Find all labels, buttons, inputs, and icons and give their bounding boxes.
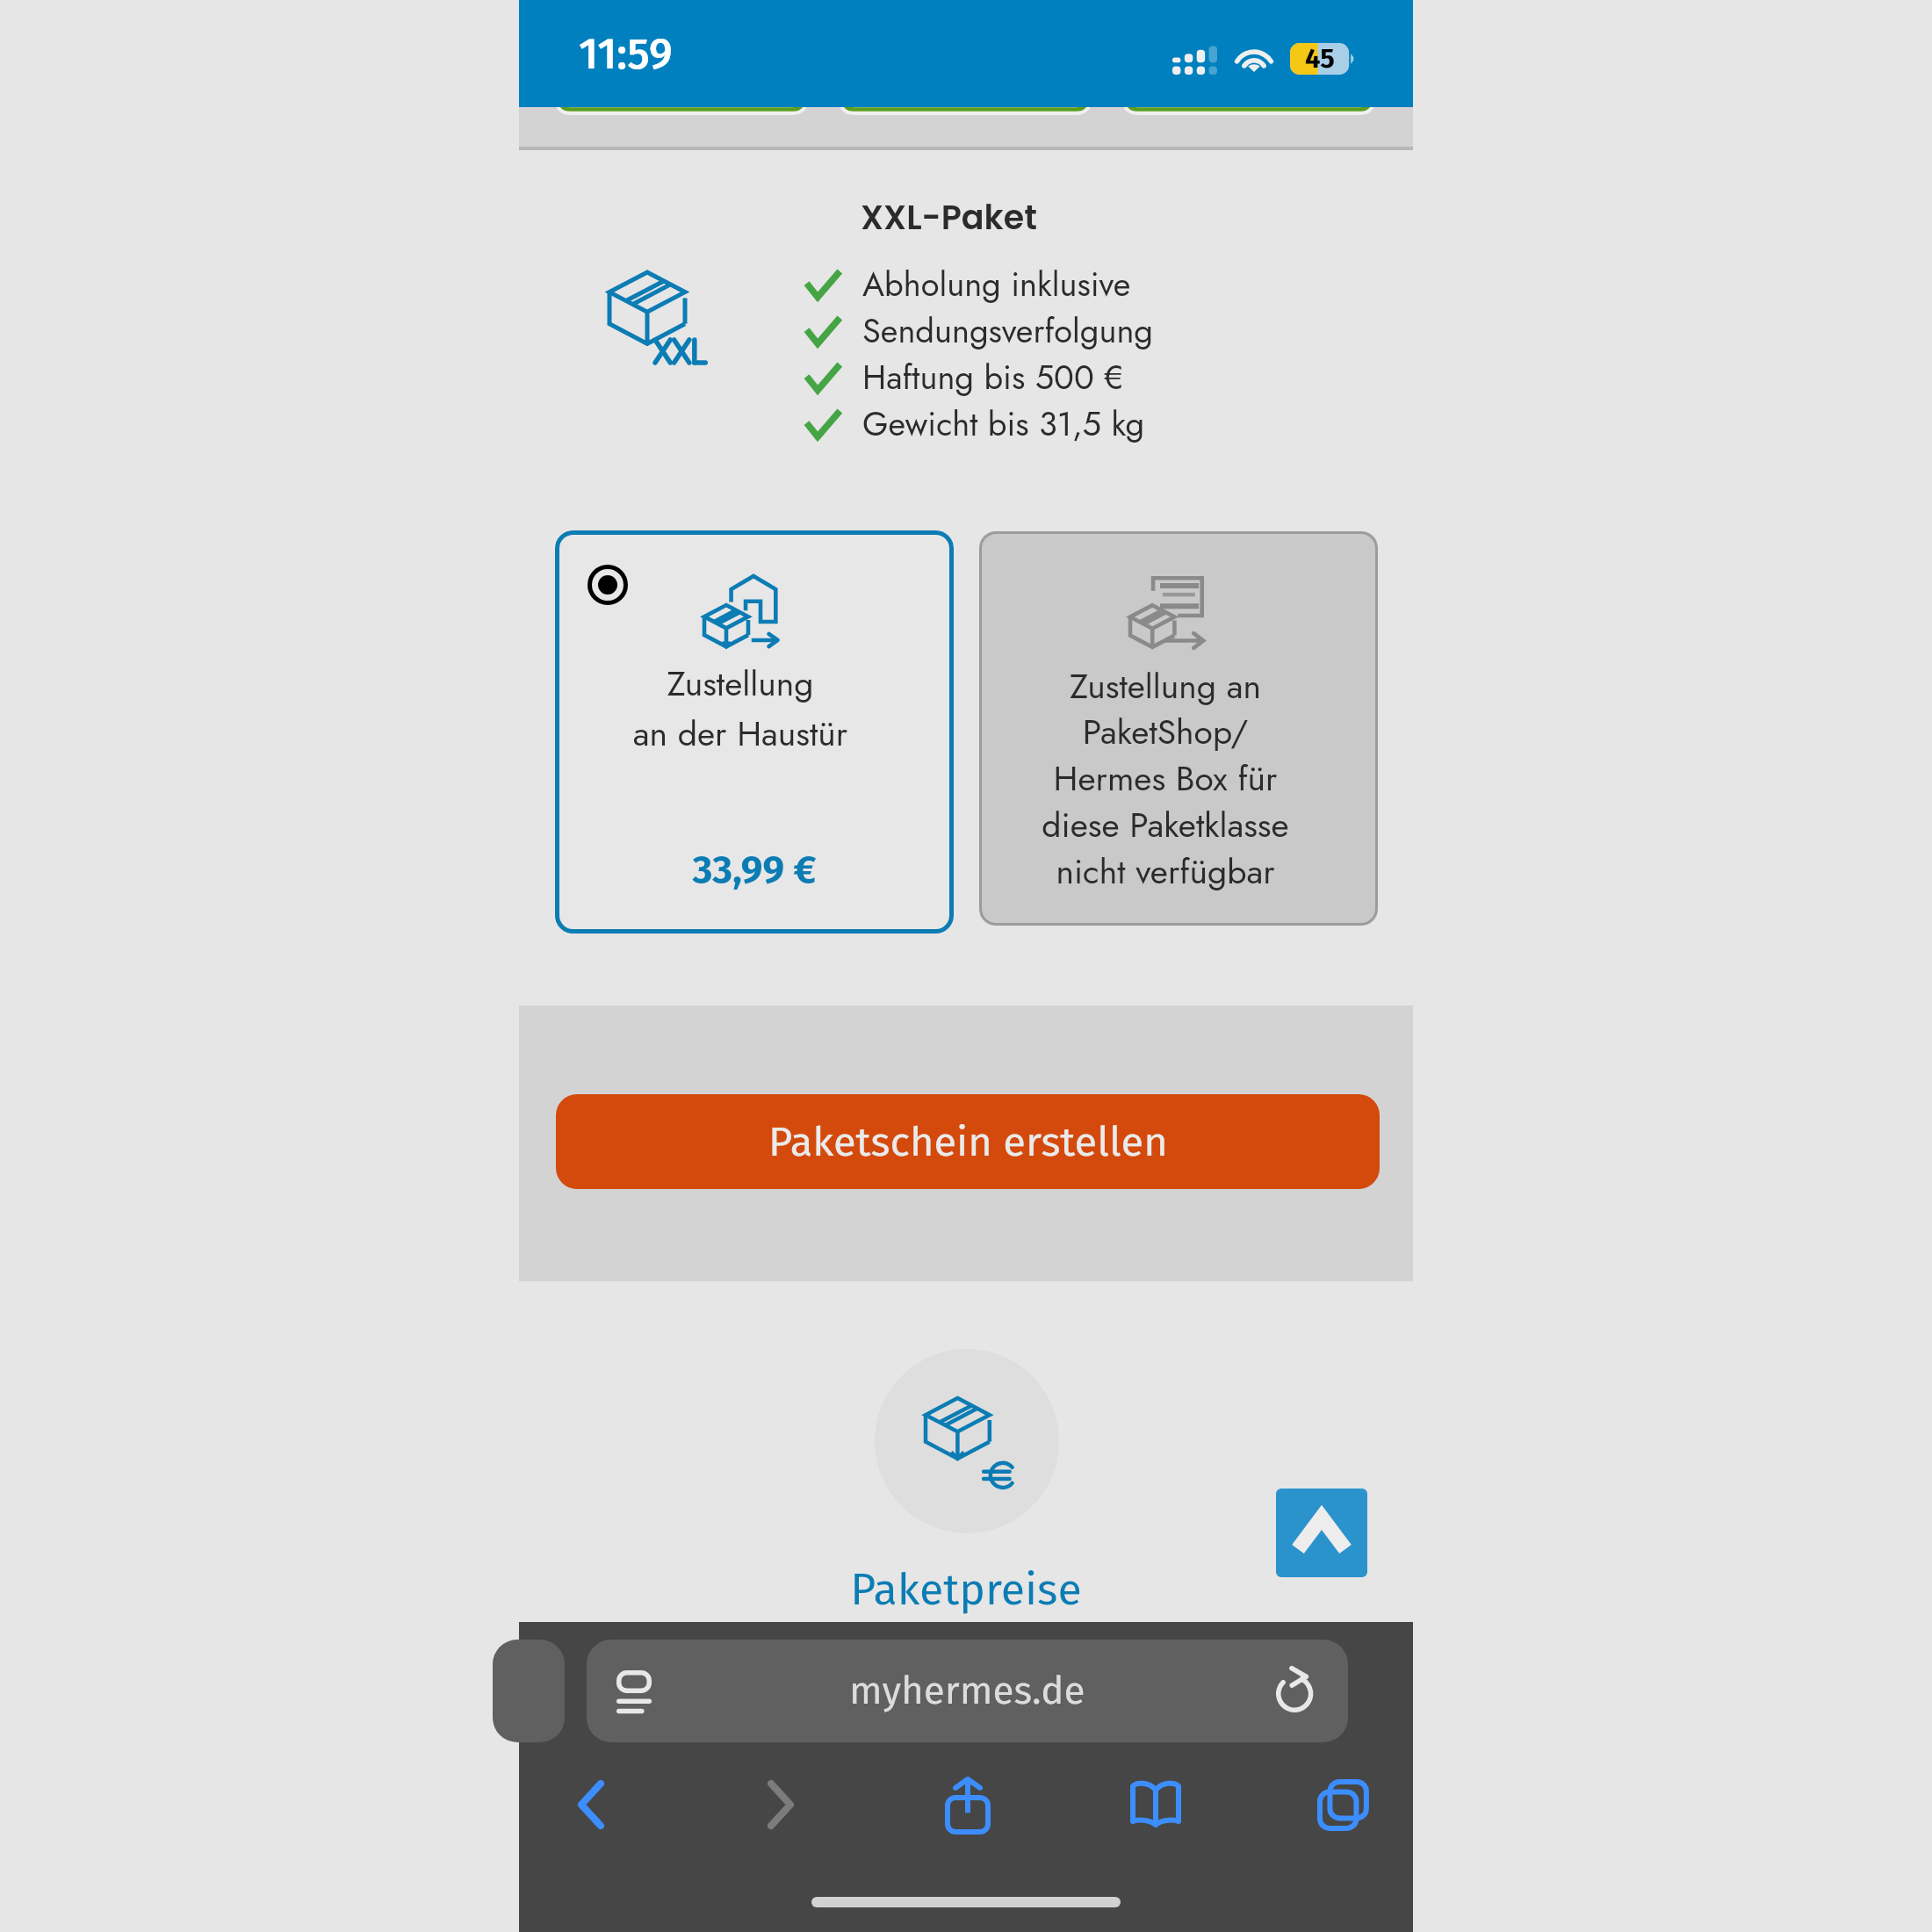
staticText: Gewicht bis 31,5 kg <box>862 400 1145 448</box>
button[interactable]: Scroll to top <box>1276 1489 1367 1577</box>
button[interactable]: Zustellung an PaketShop/ Hermes Box für … <box>979 531 1378 926</box>
staticText: 45 <box>1305 42 1335 74</box>
staticText: Haftung bis 500 € <box>862 353 1124 401</box>
staticText: XXL-Paket <box>861 194 1037 241</box>
button[interactable]: Zustellung an der Haustür <box>555 530 954 934</box>
staticText: Sendungsverfolgung <box>862 306 1154 355</box>
staticText: 11:59 <box>579 28 673 80</box>
button[interactable] <box>875 1349 1059 1533</box>
other: Reload <box>1276 1671 1316 1712</box>
button[interactable]: Back <box>554 1768 628 1842</box>
button[interactable]: Forward <box>744 1768 818 1842</box>
button[interactable]: Share <box>931 1768 1005 1842</box>
staticText: myhermes.de <box>849 1668 1085 1714</box>
staticText: Zustellung an der Haustür <box>555 659 940 759</box>
button[interactable]: Paketpreise <box>519 1563 1413 1616</box>
button[interactable]: myhermes.de <box>587 1640 1348 1742</box>
other: Reader view <box>616 1670 652 1713</box>
staticText: 33,99 € <box>555 847 954 893</box>
staticText: Abholung inklusive <box>862 260 1131 308</box>
staticText: Paketschein erstellen <box>768 1117 1168 1166</box>
button[interactable]: Bookmarks <box>1119 1768 1193 1842</box>
button[interactable]: Paketschein erstellen <box>556 1094 1380 1189</box>
button[interactable]: Tabs <box>1306 1768 1380 1842</box>
staticText: Zustellung an PaketShop/ Hermes Box für … <box>979 661 1365 897</box>
